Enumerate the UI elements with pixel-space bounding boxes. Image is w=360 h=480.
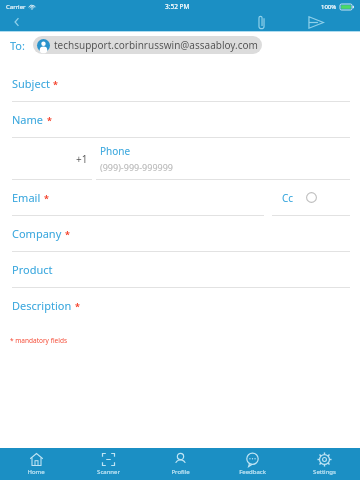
- staticText: Scanner: [97, 468, 120, 476]
- staticText: Subject: [12, 76, 50, 91]
- staticText: Product: [12, 262, 53, 277]
- staticText: (999)-999-999999: [100, 161, 173, 173]
- button[interactable]: Email: [0, 180, 270, 216]
- button[interactable]: Feedback: [216, 448, 288, 480]
- staticText: Description: [12, 298, 72, 313]
- button[interactable]: Home: [0, 448, 72, 480]
- staticText: Feedback: [239, 468, 266, 476]
- staticText: Home: [27, 468, 45, 476]
- staticText: Phone: [100, 144, 131, 158]
- staticText: *: [75, 300, 80, 312]
- staticText: *: [65, 228, 70, 240]
- staticText: +1: [76, 152, 88, 166]
- staticText: *: [53, 78, 58, 90]
- button[interactable]: Phone: [96, 138, 360, 180]
- button[interactable]: Profile: [144, 448, 216, 480]
- button[interactable]: Subject: [0, 66, 360, 102]
- button[interactable]: Name: [0, 102, 360, 138]
- staticText: Profile: [171, 468, 190, 476]
- button[interactable]: Attach file: [248, 13, 274, 31]
- button[interactable]: techsupport.corbinrusswin@assaabloy.com: [37, 38, 258, 52]
- staticText: Carrier: [6, 3, 26, 11]
- button[interactable]: Description: [0, 288, 360, 324]
- staticText: Settings: [313, 468, 336, 476]
- staticText: Name: [12, 112, 44, 127]
- staticText: To:: [10, 38, 25, 53]
- staticText: techsupport.corbinrusswin@assaabloy.com: [54, 38, 258, 52]
- staticText: 100%: [321, 3, 337, 11]
- button[interactable]: Send: [303, 13, 329, 31]
- staticText: Email: [12, 190, 41, 205]
- staticText: *: [44, 192, 49, 204]
- button[interactable]: Cc: [270, 180, 360, 216]
- button[interactable]: +1: [0, 138, 96, 180]
- staticText: * mandatory fields: [10, 336, 67, 345]
- button[interactable]: Settings: [288, 448, 360, 480]
- staticText: Cc: [282, 191, 294, 205]
- button[interactable]: Back: [4, 13, 30, 31]
- button[interactable]: Company: [0, 216, 360, 252]
- button[interactable]: Product: [0, 252, 360, 288]
- button[interactable]: Scanner: [72, 448, 144, 480]
- staticText: 3:52 PM: [165, 2, 190, 11]
- staticText: Company: [12, 226, 62, 241]
- staticText: *: [47, 114, 52, 126]
